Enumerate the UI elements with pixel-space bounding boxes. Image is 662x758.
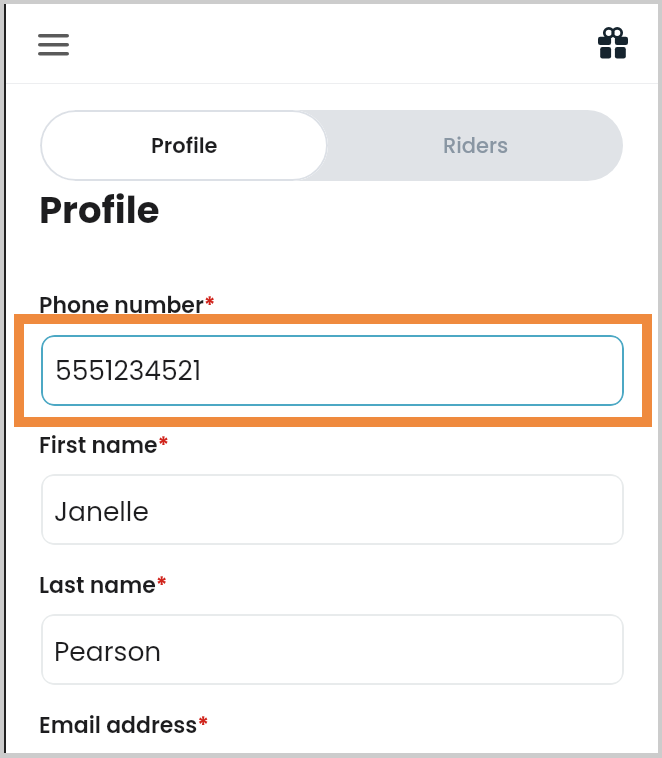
button[interactable]: Janelle — [41, 474, 624, 545]
button[interactable]: Menu — [28, 19, 78, 69]
button[interactable]: Profile — [40, 110, 328, 181]
staticText: Profile — [39, 184, 160, 236]
button[interactable]: Rewards — [589, 20, 637, 68]
button[interactable]: Riders — [328, 110, 623, 181]
staticText: Pearson — [54, 633, 162, 670]
staticText: Last name* — [39, 570, 168, 601]
staticText: Phone number* — [39, 290, 216, 321]
staticText: Riders — [443, 131, 509, 160]
staticText: First name* — [39, 430, 170, 461]
staticText: Profile — [151, 131, 218, 160]
staticText: Janelle — [54, 493, 149, 530]
staticText: Email address* — [39, 710, 210, 741]
button[interactable]: 5551234521 — [41, 335, 624, 406]
button[interactable]: Pearson — [41, 614, 624, 685]
staticText: 5551234521 — [55, 352, 202, 389]
